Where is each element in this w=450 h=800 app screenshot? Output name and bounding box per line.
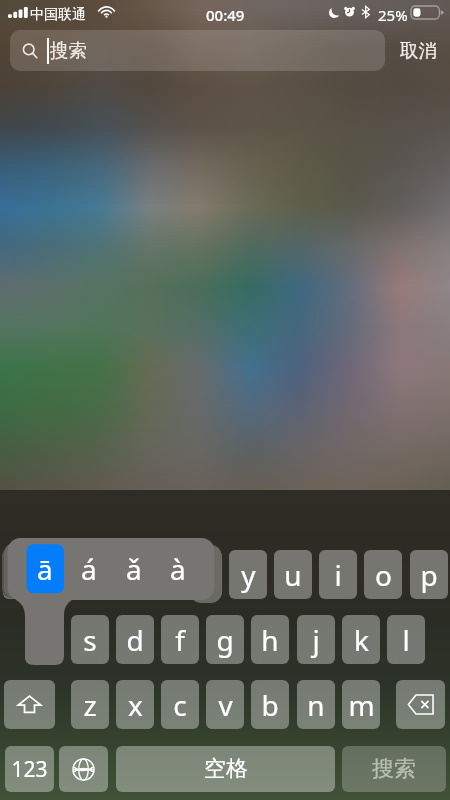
staticText: á (81, 550, 97, 588)
button[interactable]: f (161, 615, 199, 664)
button[interactable]: 空格 (116, 746, 335, 792)
staticText: à (170, 550, 186, 588)
staticText: 空格 (204, 755, 248, 783)
button[interactable]: i (319, 550, 357, 599)
staticText: 搜索 (50, 39, 87, 62)
button[interactable]: k (342, 615, 380, 664)
button[interactable]: t (184, 550, 222, 599)
staticText: b (261, 686, 279, 724)
button[interactable]: y (229, 550, 267, 599)
staticText: d (126, 621, 144, 659)
staticText: l (402, 621, 410, 659)
staticText: v (218, 686, 233, 724)
button[interactable]: Shift (4, 680, 55, 729)
button[interactable]: x (116, 680, 154, 729)
button[interactable]: c (161, 680, 199, 729)
button[interactable]: à (156, 542, 200, 596)
staticText: 123 (11, 755, 48, 784)
staticText: i (334, 556, 342, 594)
button[interactable]: r (138, 550, 176, 599)
staticText: j (312, 621, 320, 659)
button[interactable]: h (251, 615, 289, 664)
staticText: y (241, 556, 256, 594)
staticText: 搜索 (372, 755, 416, 783)
button[interactable]: w (48, 550, 86, 599)
button[interactable]: a (25, 615, 63, 664)
button[interactable]: ǎ (112, 542, 156, 596)
button[interactable]: u (274, 550, 312, 599)
staticText: s (83, 621, 97, 659)
staticText: 取消 (400, 39, 437, 62)
button[interactable]: z (71, 680, 109, 729)
button[interactable]: d (116, 615, 154, 664)
staticText: n (307, 686, 325, 724)
button[interactable]: Backspace (396, 680, 445, 729)
staticText: g (216, 621, 234, 659)
button[interactable]: 取消 (391, 30, 446, 71)
button[interactable]: p (410, 550, 448, 599)
button[interactable]: Switch keyboard (59, 746, 108, 792)
staticText: w (56, 556, 79, 594)
button[interactable]: b (251, 680, 289, 729)
button[interactable]: 搜索 (10, 30, 385, 71)
staticText: o (375, 556, 392, 594)
button[interactable]: n (297, 680, 335, 729)
staticText: ā (37, 550, 53, 588)
button[interactable]: g (206, 615, 244, 664)
button[interactable]: l (387, 615, 425, 664)
staticText: k (354, 621, 369, 659)
button[interactable]: o (364, 550, 402, 599)
button[interactable]: q (3, 550, 41, 599)
button[interactable]: 搜索 (342, 746, 446, 792)
button[interactable]: e (93, 550, 131, 599)
staticText: p (420, 556, 438, 594)
staticText: h (261, 621, 279, 659)
staticText: q (13, 556, 31, 594)
staticText: 25% (378, 5, 408, 25)
staticText: ǎ (126, 550, 142, 588)
staticText: 中国联通 (30, 6, 86, 24)
staticText: z (83, 686, 97, 724)
staticText: f (175, 621, 185, 659)
staticText: c (173, 686, 187, 724)
button[interactable]: 123 (5, 746, 54, 792)
button[interactable]: m (342, 680, 380, 729)
button[interactable]: v (206, 680, 244, 729)
staticText: 00:49 (206, 5, 245, 25)
staticText: u (284, 556, 302, 594)
button[interactable]: s (71, 615, 109, 664)
button[interactable]: ā (23, 542, 67, 596)
staticText: m (348, 686, 375, 724)
button[interactable]: á (67, 542, 111, 596)
staticText: x (128, 686, 143, 724)
button[interactable]: j (297, 615, 335, 664)
